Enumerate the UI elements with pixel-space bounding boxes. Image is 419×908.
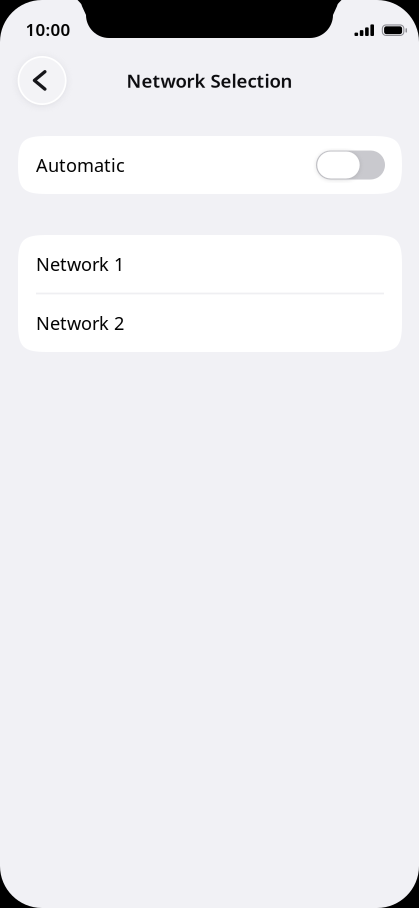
staticText: Automatic bbox=[36, 153, 125, 177]
button[interactable]: Network 1 bbox=[18, 235, 402, 293]
button[interactable]: Automatic bbox=[18, 136, 402, 194]
staticText: Network 1 bbox=[36, 252, 124, 276]
button[interactable]: Network 2 bbox=[18, 294, 402, 352]
staticText: Network 2 bbox=[36, 311, 124, 335]
button[interactable]: Back bbox=[18, 56, 67, 105]
staticText: 10:00 bbox=[26, 18, 71, 41]
staticText: Network Selection bbox=[126, 68, 292, 93]
